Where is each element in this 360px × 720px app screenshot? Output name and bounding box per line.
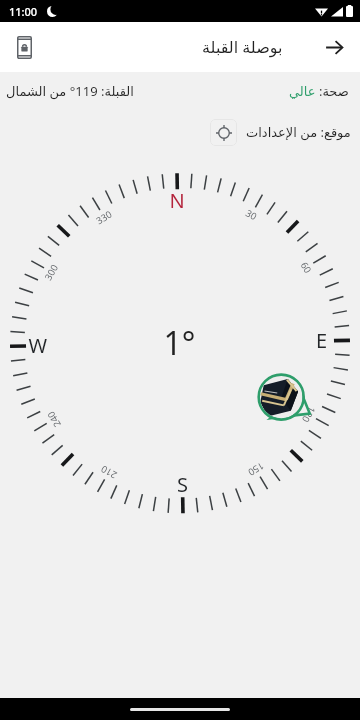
staticText: موقع: من الإعدادات <box>246 123 351 141</box>
staticText: 11:00 <box>9 4 38 19</box>
staticText: بوصلة القبلة <box>202 36 283 58</box>
button[interactable]: Back <box>314 27 354 67</box>
staticText: القبلة: 119° من الشمال <box>6 82 134 100</box>
button[interactable]: Use my location <box>210 119 237 146</box>
staticText: صحة: عالي <box>289 82 349 100</box>
button[interactable]: Screen lock rotation <box>4 27 44 67</box>
